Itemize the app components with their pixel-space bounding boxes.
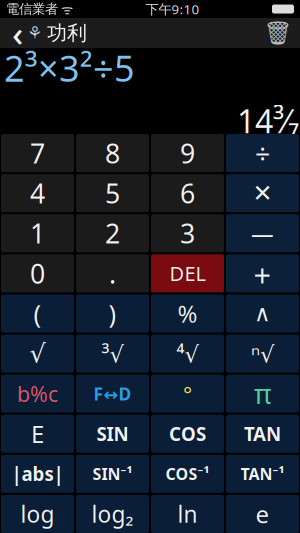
staticText: π (254, 376, 271, 411)
staticText: 2 (105, 215, 120, 251)
staticText: 功利 (47, 21, 87, 45)
button[interactable]: 3 (151, 214, 224, 252)
button[interactable]: 6 (151, 174, 224, 212)
button[interactable]: ³√ (76, 334, 149, 373)
button[interactable]: ) (76, 294, 149, 332)
staticText: ∧ (254, 301, 271, 326)
button[interactable]: ÷ (226, 134, 299, 172)
staticText: SIN (96, 421, 128, 446)
staticText: F↔D (93, 382, 131, 405)
staticText: 9 (180, 135, 195, 171)
button[interactable]: . (76, 254, 149, 292)
button[interactable]: + (226, 254, 299, 292)
staticText: log₂ (91, 499, 133, 529)
button[interactable]: 7 (1, 134, 74, 172)
button[interactable]: SIN⁻¹ (76, 455, 149, 493)
staticText: . (109, 256, 116, 291)
staticText: e (255, 498, 269, 530)
button[interactable]: TAN (226, 415, 299, 453)
staticText: ✕ (252, 179, 272, 207)
button[interactable]: — (226, 214, 299, 252)
button[interactable]: 9 (151, 134, 224, 172)
button[interactable]: |abs| (1, 455, 74, 493)
button[interactable]: ⁿ√ (226, 334, 299, 373)
button[interactable]: DEL (151, 254, 224, 292)
staticText: ‹ (12, 10, 23, 56)
staticText: ( (33, 297, 41, 330)
staticText: ÷ (255, 135, 270, 171)
staticText: b%c (17, 379, 58, 408)
button[interactable]: E (1, 415, 74, 453)
staticText: E (31, 418, 44, 450)
staticText: ln (177, 499, 197, 529)
staticText: SIN⁻¹ (92, 463, 132, 484)
staticText: + (253, 254, 271, 292)
staticText: 2³×3²÷5 (4, 44, 135, 92)
button[interactable]: π (226, 375, 299, 413)
button[interactable]: b%c (1, 375, 74, 413)
button[interactable]: e (226, 495, 299, 533)
button[interactable]: 8 (76, 134, 149, 172)
button[interactable]: ‹ (4, 18, 95, 48)
staticText: 3 (180, 215, 195, 251)
button[interactable]: ln (151, 495, 224, 533)
button[interactable]: log₂ (76, 495, 149, 533)
staticText: 1 (30, 215, 45, 251)
button[interactable]: COS (151, 415, 224, 453)
button[interactable]: Clear history (260, 18, 296, 48)
staticText: 🗑 (263, 20, 292, 46)
staticText: 0 (30, 256, 45, 291)
staticText: 8 (105, 135, 120, 171)
staticText: |abs| (11, 461, 63, 486)
staticText: ³√ (101, 338, 123, 369)
button[interactable]: % (151, 294, 224, 332)
staticText: ⁿ√ (251, 338, 274, 369)
staticText: 電信業者 (6, 1, 58, 17)
staticText: 5 (105, 175, 120, 211)
button[interactable]: log (1, 495, 74, 533)
staticText: 6 (180, 175, 195, 211)
staticText: 下午9:10 (145, 0, 199, 18)
staticText: COS⁻¹ (165, 463, 209, 484)
staticText: % (177, 297, 197, 329)
staticText: √ (29, 339, 45, 368)
button[interactable]: ⁴√ (151, 334, 224, 373)
button[interactable]: F↔D (76, 375, 149, 413)
staticText: ° (183, 379, 192, 408)
button[interactable]: ( (1, 294, 74, 332)
staticText: log (20, 499, 54, 529)
staticText: ⁴√ (176, 338, 198, 369)
button[interactable]: ° (151, 375, 224, 413)
button[interactable]: 2 (76, 214, 149, 252)
staticText: TAN (244, 421, 281, 446)
staticText: — (251, 218, 274, 248)
button[interactable]: SIN (76, 415, 149, 453)
staticText: ) (108, 297, 116, 330)
staticText: 14³⁄₇ (237, 100, 299, 142)
staticText: DEL (169, 260, 205, 287)
staticText: COS (169, 421, 206, 446)
button[interactable]: 1 (1, 214, 74, 252)
button[interactable]: 5 (76, 174, 149, 212)
staticText: ⚘ (27, 23, 43, 43)
button[interactable]: √ (1, 334, 74, 373)
button[interactable]: 4 (1, 174, 74, 212)
button[interactable]: ✕ (226, 174, 299, 212)
staticText: 4 (30, 175, 45, 211)
button[interactable]: 0 (1, 254, 74, 292)
staticText: TAN⁻¹ (240, 463, 284, 484)
staticText: 7 (30, 135, 45, 171)
button[interactable]: COS⁻¹ (151, 455, 224, 493)
button[interactable]: TAN⁻¹ (226, 455, 299, 493)
button[interactable]: ∧ (226, 294, 299, 332)
staticText: ᯤ (58, 0, 73, 18)
